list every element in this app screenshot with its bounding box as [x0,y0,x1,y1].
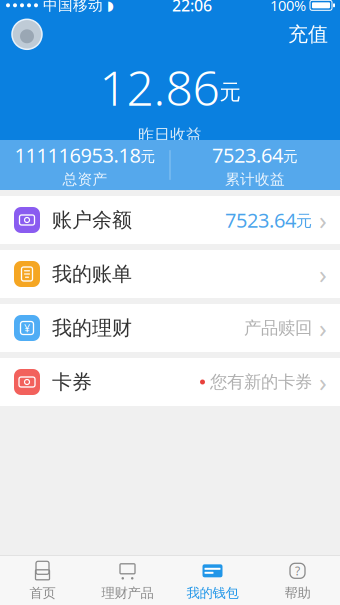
staticText: 7523.64 [212,142,283,168]
staticText: › [319,203,327,237]
staticText: 我的钱包 [186,585,238,601]
staticText: 卡券 [52,370,92,394]
staticText: 100% [270,0,306,15]
staticText: ? [295,563,300,579]
staticText: 12.86 [99,55,219,119]
staticText: › [319,257,327,291]
button[interactable]: ? [255,556,340,605]
staticText: 中国移动 [43,0,103,14]
staticText: 元 [296,211,312,231]
staticText: 总资产 [62,170,107,188]
staticText: 元 [283,147,298,165]
staticText: 元 [219,79,240,105]
staticText: 您有新的卡券 [210,371,312,393]
button[interactable]: 充值 [276,14,340,55]
staticText: › [319,311,327,345]
button[interactable]: 账户余额 [0,196,340,244]
staticText: 帮助 [284,585,310,601]
staticText: 111116953.18 [14,142,140,168]
button[interactable]: Profile [0,15,50,53]
staticText: ◗ [107,0,114,13]
staticText: 22:06 [172,0,212,16]
button[interactable]: 理财产品 [85,556,170,605]
staticText: 累计收益 [225,170,285,188]
button[interactable]: 我的账单 [0,250,340,298]
staticText: 首页 [29,585,55,601]
button[interactable]: ¥ [0,304,340,352]
button[interactable]: 卡券 [0,358,340,406]
staticText: › [319,365,327,399]
staticText: 7523.64 [225,207,296,233]
staticText: ¥ [24,321,30,335]
staticText: 产品赎回 [244,317,312,339]
staticText: 我的账单 [52,262,132,286]
staticText: 我的理财 [52,316,132,340]
staticText: 理财产品 [101,585,153,601]
staticText: 充值 [288,22,328,47]
staticText: 元 [140,147,155,165]
staticText: 昨日收益 [138,125,202,145]
button[interactable]: 首页 [0,556,85,605]
staticText: 账户余额 [52,208,132,232]
button[interactable]: 我的钱包 [170,556,255,605]
